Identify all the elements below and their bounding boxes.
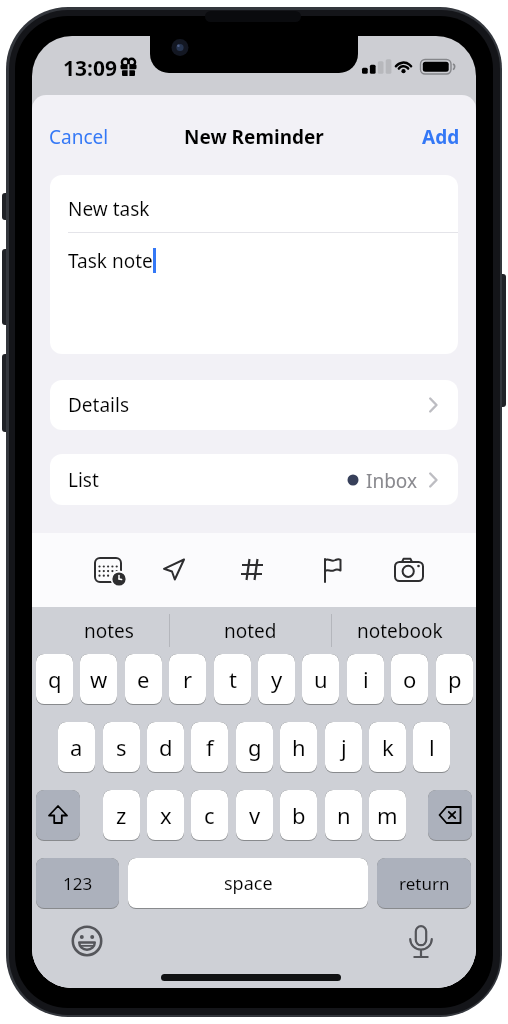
staticText: Task note	[68, 248, 153, 274]
staticText: 13:09	[63, 54, 117, 83]
button[interactable]	[71, 925, 103, 957]
staticText: j	[341, 732, 347, 762]
button[interactable]: List	[50, 454, 458, 505]
button[interactable]: r	[169, 654, 206, 705]
staticText: return	[399, 872, 450, 895]
button[interactable]: space	[128, 858, 368, 909]
staticText: l	[429, 732, 435, 762]
button[interactable]: c	[191, 790, 228, 841]
button[interactable]: h	[280, 722, 317, 773]
staticText: f	[206, 732, 214, 762]
staticText: p	[448, 664, 462, 694]
staticText: notes	[84, 618, 134, 644]
staticText: o	[403, 664, 417, 694]
button[interactable]	[93, 553, 127, 587]
staticText: List	[68, 467, 99, 493]
staticText: Add	[422, 124, 460, 150]
staticText: New Reminder	[184, 124, 324, 150]
button[interactable]: n	[325, 790, 362, 841]
button[interactable]: w	[80, 654, 117, 705]
staticText: e	[137, 664, 150, 694]
button[interactable]: p	[436, 654, 473, 705]
button[interactable]: return	[377, 858, 471, 909]
staticText: s	[116, 732, 127, 762]
button[interactable]: f	[191, 722, 228, 773]
button[interactable]: t	[214, 654, 251, 705]
button[interactable]: i	[347, 654, 384, 705]
button[interactable]: s	[103, 722, 140, 773]
staticText: n	[337, 800, 351, 830]
staticText: h	[292, 732, 306, 762]
staticText: i	[363, 664, 369, 694]
staticText: space	[224, 871, 273, 896]
button[interactable]	[36, 790, 80, 841]
button[interactable]: v	[236, 790, 273, 841]
staticText: u	[314, 664, 328, 694]
staticText: d	[159, 732, 173, 762]
staticText: y	[271, 664, 283, 694]
staticText: m	[377, 800, 398, 830]
button[interactable]	[428, 790, 472, 841]
button[interactable]: b	[280, 790, 317, 841]
button[interactable]: k	[369, 722, 406, 773]
staticText: 123	[63, 872, 93, 895]
staticText: c	[204, 800, 215, 830]
button[interactable]	[235, 553, 269, 587]
staticText: Inbox	[366, 468, 418, 494]
button[interactable]: notes	[40, 607, 177, 654]
button[interactable]: y	[258, 654, 295, 705]
button[interactable]	[315, 553, 349, 587]
button[interactable]: e	[125, 654, 162, 705]
button[interactable]	[408, 925, 434, 962]
staticText: a	[70, 732, 83, 762]
staticText: q	[48, 664, 62, 694]
staticText: noted	[224, 618, 277, 644]
button[interactable]: Add	[422, 124, 460, 150]
button[interactable]	[392, 553, 426, 587]
button[interactable]	[157, 553, 191, 587]
button[interactable]: m	[369, 790, 406, 841]
button[interactable]: z	[103, 790, 140, 841]
staticText: g	[248, 732, 262, 762]
button[interactable]: g	[236, 722, 273, 773]
button[interactable]: a	[58, 722, 95, 773]
staticText: k	[382, 732, 394, 762]
button[interactable]: Details	[50, 380, 458, 430]
button[interactable]: d	[147, 722, 184, 773]
staticText: b	[292, 800, 306, 830]
button[interactable]: noted	[169, 607, 331, 654]
button[interactable]: 123	[36, 858, 119, 909]
button[interactable]: o	[391, 654, 428, 705]
button[interactable]: j	[325, 722, 362, 773]
button[interactable]: q	[36, 654, 73, 705]
staticText: New task	[68, 196, 150, 222]
staticText: v	[249, 800, 261, 830]
button[interactable]: Cancel	[49, 124, 109, 150]
button[interactable]: x	[147, 790, 184, 841]
staticText: notebook	[357, 618, 443, 644]
staticText: t	[229, 664, 237, 694]
button[interactable]: u	[302, 654, 339, 705]
staticText: w	[90, 664, 108, 694]
staticText: Cancel	[49, 124, 109, 150]
button[interactable]: notebook	[331, 607, 468, 654]
staticText: Details	[68, 392, 130, 418]
staticText: r	[183, 664, 193, 694]
staticText: x	[160, 800, 172, 830]
button[interactable]: l	[413, 722, 450, 773]
staticText: z	[116, 800, 127, 830]
